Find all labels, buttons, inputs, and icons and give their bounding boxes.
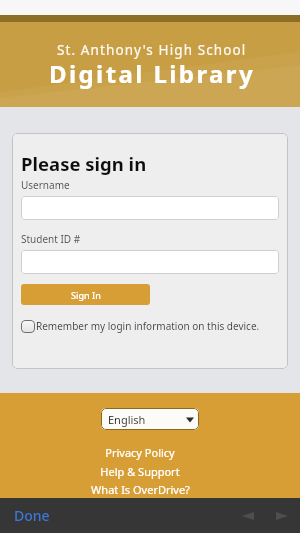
button[interactable]: Help & Support [100,464,180,479]
button[interactable]: Sign In [21,284,150,305]
staticText: What Is OverDrive? [91,482,190,497]
button[interactable] [21,196,279,220]
button[interactable]: Back [234,502,262,530]
button[interactable]: Remember my login information on this de… [21,319,279,333]
staticText: Digital Library [49,57,256,90]
staticText: English [108,412,146,427]
button[interactable]: Done [9,500,55,531]
staticText: Privacy Policy [105,445,175,460]
staticText: Sign In [71,289,101,301]
button[interactable] [21,250,279,274]
staticText: Remember my login information on this de… [36,319,260,333]
staticText: Please sign in [21,151,147,176]
staticText: Done [14,506,50,525]
button[interactable]: What Is OverDrive? [91,482,190,497]
staticText: Username [21,178,70,192]
button[interactable]: Forward [268,502,296,530]
button[interactable]: English [101,408,199,430]
staticText: Help & Support [100,464,180,479]
button[interactable]: Privacy Policy [105,445,175,460]
staticText: Student ID # [21,232,81,246]
staticText: St. Anthony's High School [57,41,247,59]
